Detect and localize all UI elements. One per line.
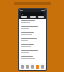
button[interactable] (21, 16, 27, 18)
button[interactable] (21, 20, 44, 21)
button[interactable]: Profile (40, 63, 45, 70)
button[interactable] (21, 32, 44, 33)
button[interactable] (21, 52, 44, 53)
button[interactable] (21, 40, 44, 41)
button[interactable]: Search (35, 63, 40, 70)
button[interactable] (21, 22, 44, 23)
button[interactable] (21, 56, 44, 57)
button[interactable] (38, 16, 44, 18)
button[interactable] (21, 28, 44, 29)
button[interactable] (21, 12, 44, 16)
button[interactable] (21, 46, 44, 47)
button[interactable] (21, 50, 44, 51)
button[interactable] (21, 26, 44, 27)
button[interactable] (21, 38, 44, 39)
button[interactable] (21, 44, 44, 45)
button[interactable]: Home (20, 63, 25, 70)
button[interactable] (21, 58, 44, 59)
button[interactable]: Browse (25, 63, 30, 70)
button[interactable] (21, 34, 44, 35)
button[interactable]: Library (30, 63, 35, 70)
button[interactable] (30, 16, 36, 18)
